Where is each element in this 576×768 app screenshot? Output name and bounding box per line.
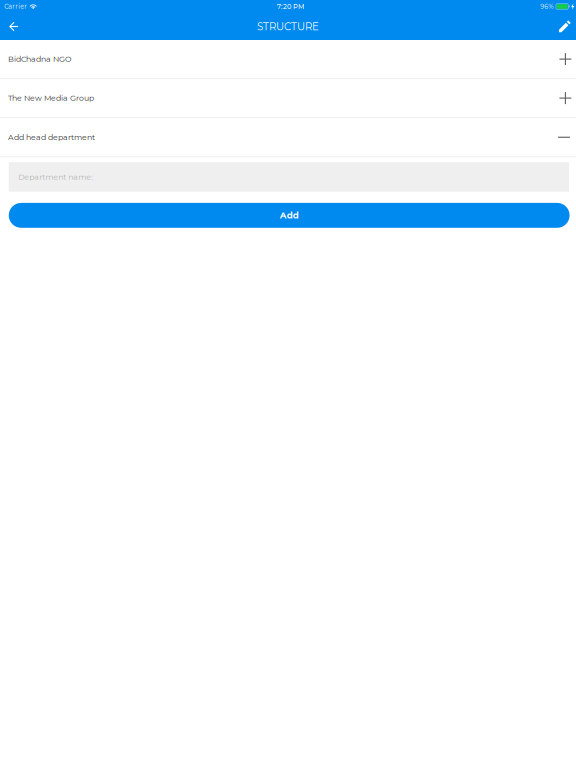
staticText: Department name: bbox=[18, 172, 93, 182]
staticText: 96% bbox=[540, 3, 553, 10]
button[interactable]: The New Media Group bbox=[0, 79, 576, 118]
staticText: Add head department bbox=[8, 132, 95, 142]
staticText: BidChadna NGO bbox=[8, 54, 71, 64]
button[interactable]: Add bbox=[9, 203, 570, 228]
staticText: 7:20 PM bbox=[277, 2, 304, 10]
staticText: STRUCTURE bbox=[257, 20, 319, 33]
button[interactable]: Edit bbox=[551, 13, 576, 40]
staticText: Carrier bbox=[4, 3, 27, 10]
staticText: The New Media Group bbox=[8, 93, 94, 103]
button[interactable]: Add head department bbox=[0, 118, 576, 157]
button[interactable]: BidChadna NGO bbox=[0, 40, 576, 79]
staticText: Add bbox=[280, 210, 299, 221]
button[interactable]: Back bbox=[0, 13, 27, 40]
